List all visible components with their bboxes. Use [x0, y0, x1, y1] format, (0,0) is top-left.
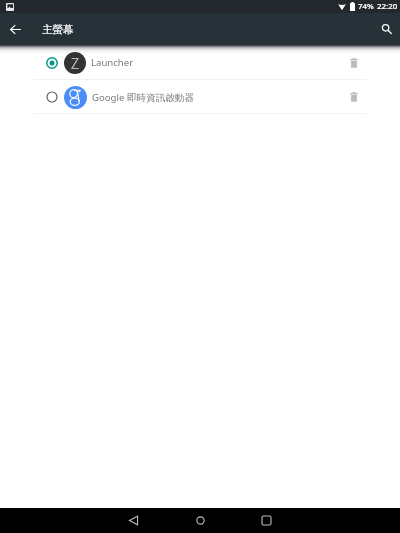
- staticText: 22:20: [377, 1, 398, 12]
- button[interactable]: Search: [376, 15, 398, 43]
- button[interactable]: Back: [6, 20, 24, 38]
- staticText: 主螢幕: [42, 23, 74, 36]
- staticText: 74%: [358, 1, 374, 12]
- staticText: Google 即時資訊啟動器: [92, 91, 195, 104]
- button[interactable]: Delete: [341, 46, 367, 80]
- button[interactable]: Google 即時資訊啟動器: [0, 80, 400, 114]
- button[interactable]: Recents: [244, 508, 288, 533]
- button[interactable]: Z: [0, 45, 400, 80]
- staticText: Z: [71, 54, 80, 73]
- staticText: Launcher: [91, 56, 134, 69]
- button[interactable]: Delete: [341, 80, 367, 114]
- button[interactable]: Back: [111, 508, 155, 533]
- button[interactable]: Home: [178, 508, 222, 533]
